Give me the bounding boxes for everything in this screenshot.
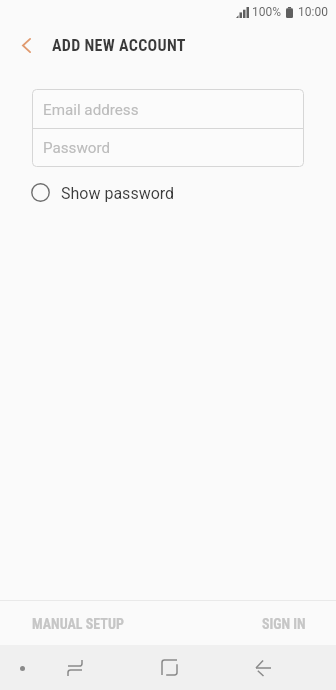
button[interactable]: SIGN IN (168, 601, 336, 645)
staticText: Password (43, 139, 111, 157)
staticText: ADD NEW ACCOUNT (52, 36, 186, 55)
button[interactable]: Email address (32, 89, 304, 128)
button[interactable]: Back (216, 645, 310, 690)
button[interactable]: Home (122, 645, 216, 690)
staticText: SIGN IN (262, 616, 306, 632)
button[interactable]: Navigate up (0, 24, 46, 66)
staticText: MANUAL SETUP (32, 616, 124, 632)
button[interactable]: Show password (0, 167, 336, 218)
button[interactable]: Password (32, 129, 304, 167)
staticText: Show password (61, 184, 175, 203)
button[interactable]: Recents (28, 645, 122, 690)
staticText: 100% (252, 5, 282, 19)
staticText: 10:00 (298, 5, 328, 19)
button[interactable]: MANUAL SETUP (0, 601, 168, 645)
staticText: Email address (43, 101, 139, 119)
